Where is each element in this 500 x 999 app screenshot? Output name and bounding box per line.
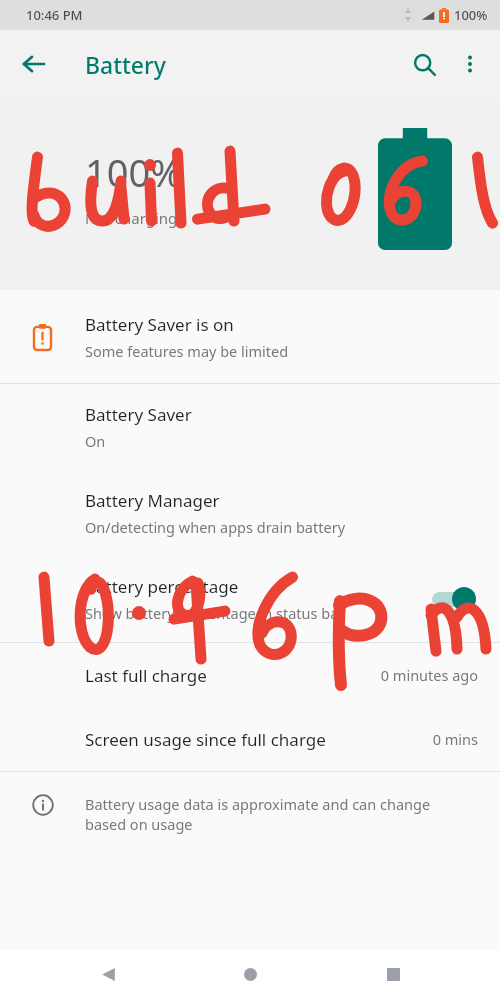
button[interactable]: Recents (358, 950, 428, 999)
staticText: Show battery percentage in status bar (85, 603, 345, 623)
staticText: Battery Saver is on (85, 313, 234, 336)
staticText: Battery usage data is approximate and ca… (85, 794, 470, 834)
staticText: Last full charge (85, 664, 380, 687)
button[interactable]: Back (73, 950, 143, 999)
button[interactable]: Search (400, 40, 448, 88)
staticText: 0 minutes ago (380, 665, 478, 685)
button[interactable]: Battery Saver is on (0, 290, 500, 383)
staticText: 100% (454, 6, 488, 24)
staticText: Not charging (85, 208, 178, 228)
staticText: On (85, 431, 106, 451)
button[interactable]: Battery Saver (0, 384, 500, 470)
button[interactable]: Battery percentage (0, 556, 500, 642)
staticText: 10:46 PM (26, 6, 83, 24)
button[interactable]: Home (215, 950, 285, 999)
staticText: Battery Manager (85, 489, 220, 512)
button[interactable]: More options (448, 42, 492, 86)
staticText: Battery Saver (85, 403, 192, 426)
staticText: Battery percentage (85, 575, 239, 598)
staticText: Some features may be limited (85, 341, 289, 361)
button[interactable]: Battery Manager (0, 470, 500, 556)
staticText: Battery (85, 49, 166, 80)
staticText: 0 mins (432, 729, 478, 749)
staticText: On/detecting when apps drain battery (85, 517, 346, 537)
button[interactable]: Screen usage since full charge (0, 707, 500, 771)
button[interactable]: Last full charge (0, 643, 500, 707)
button[interactable]: Back (10, 40, 58, 88)
staticText: 100% (85, 146, 182, 198)
staticText: Screen usage since full charge (85, 728, 432, 751)
